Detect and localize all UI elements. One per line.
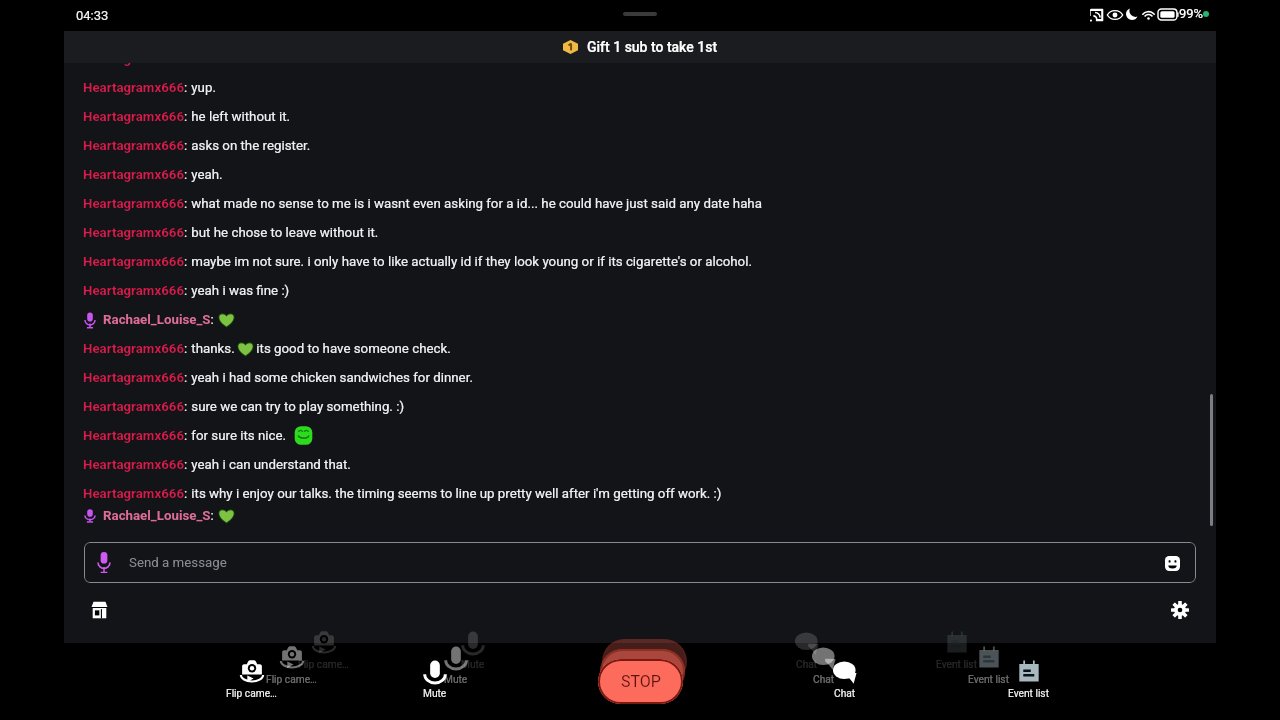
button[interactable]: Event list bbox=[983, 659, 1073, 707]
button[interactable]: Heartagramx666: bbox=[83, 363, 1216, 392]
staticText: Mute bbox=[444, 674, 468, 686]
button[interactable]: Heartagramx666: bbox=[83, 131, 1216, 160]
staticText: Heartagramx666: bbox=[83, 283, 188, 299]
button[interactable]: Heartagramx666: bbox=[83, 63, 1216, 73]
staticText: yeah. bbox=[188, 167, 223, 183]
staticText: STOP bbox=[621, 672, 661, 691]
button[interactable]: Send a message bbox=[84, 542, 1196, 583]
button[interactable]: Heartagramx666: bbox=[83, 334, 1216, 363]
staticText: Heartagramx666: bbox=[83, 167, 188, 183]
staticText: thanks. bbox=[188, 341, 238, 357]
button[interactable]: Heartagramx666: bbox=[83, 102, 1216, 131]
staticText: Rachael_Louise_S: bbox=[103, 312, 214, 328]
staticText: Flip came… bbox=[298, 659, 349, 671]
staticText: Heartagramx666: bbox=[83, 80, 188, 96]
staticText: Heartagramx666: bbox=[83, 109, 188, 125]
staticText: Flip came… bbox=[226, 688, 277, 700]
staticText: Mute bbox=[423, 688, 447, 700]
button[interactable]: Heartagramx666: bbox=[83, 450, 1216, 479]
staticText: Rachael_Louise_S: bbox=[103, 508, 214, 523]
staticText: Heartagramx666: bbox=[83, 370, 188, 386]
staticText: 99% bbox=[1179, 6, 1204, 21]
button[interactable]: Mute bbox=[428, 630, 518, 678]
staticText: Heartagramx666: bbox=[83, 486, 188, 502]
staticText: Event list bbox=[936, 659, 977, 671]
staticText: Chat bbox=[834, 688, 856, 700]
button[interactable]: STOP bbox=[602, 639, 687, 684]
staticText: Heartagramx666: bbox=[83, 63, 188, 67]
staticText: but he chose to leave without it. bbox=[188, 225, 379, 241]
button[interactable]: Gift 1 sub to take 1st bbox=[64, 31, 1216, 63]
button[interactable]: Flip came… bbox=[206, 659, 296, 707]
staticText: Gift 1 sub to take 1st bbox=[587, 39, 718, 55]
button[interactable]: Heartagramx666: bbox=[83, 479, 1216, 508]
staticText: Heartagramx666: bbox=[83, 457, 188, 473]
staticText: Heartagramx666: bbox=[83, 341, 188, 357]
staticText: yeah i had some chicken sandwiches for d… bbox=[188, 370, 473, 386]
button[interactable]: STOP bbox=[600, 649, 685, 694]
button[interactable]: Channel points shop bbox=[83, 594, 115, 626]
button[interactable]: Heartagramx666: bbox=[83, 160, 1216, 189]
button[interactable]: Mute bbox=[411, 645, 501, 693]
button[interactable]: Mute bbox=[390, 659, 480, 707]
staticText: Heartagramx666: bbox=[83, 428, 188, 444]
staticText: Heartagramx666: bbox=[83, 225, 188, 241]
button[interactable]: Heartagramx666: bbox=[83, 218, 1216, 247]
staticText: Heartagramx666: bbox=[83, 196, 188, 212]
button[interactable]: Event list bbox=[911, 630, 1001, 678]
button[interactable]: STOP bbox=[598, 659, 683, 704]
staticText: Event list bbox=[1008, 688, 1049, 700]
staticText: asks on the register. bbox=[188, 138, 311, 154]
button[interactable]: Chat bbox=[779, 645, 869, 693]
staticText: Send a message bbox=[129, 555, 227, 571]
button[interactable]: Heartagramx666: bbox=[83, 276, 1216, 305]
button[interactable]: Flip came… bbox=[278, 630, 368, 678]
button[interactable]: Heartagramx666: bbox=[83, 247, 1216, 276]
staticText: yeah i was fine :) bbox=[188, 283, 290, 299]
staticText: yeah i can understand that. bbox=[188, 457, 351, 473]
staticText: for sure its nice. bbox=[188, 428, 290, 444]
staticText: Flip came… bbox=[266, 674, 317, 686]
staticText: Heartagramx666: bbox=[83, 138, 188, 154]
staticText: Chat bbox=[796, 659, 818, 671]
button[interactable]: Chat bbox=[762, 630, 852, 678]
button[interactable]: Flip came… bbox=[246, 645, 336, 693]
staticText: STOP bbox=[623, 662, 663, 681]
staticText: yup. bbox=[188, 80, 216, 96]
staticText: its why i enjoy our talks. the timing se… bbox=[188, 486, 722, 502]
staticText: Chat bbox=[813, 674, 835, 686]
button[interactable]: Chat bbox=[800, 659, 890, 707]
staticText: Event list bbox=[968, 674, 1009, 686]
button[interactable]: Chat settings bbox=[1164, 594, 1196, 626]
button[interactable]: Emotes bbox=[1160, 551, 1184, 575]
staticText: sure we can try to play something. :) bbox=[188, 399, 405, 415]
button[interactable]: Event list bbox=[943, 645, 1033, 693]
staticText: STOP bbox=[625, 652, 665, 671]
button[interactable]: Heartagramx666: bbox=[83, 392, 1216, 421]
staticText: Heartagramx666: bbox=[83, 399, 188, 415]
button[interactable]: Rachael_Louise_S: bbox=[83, 305, 1216, 334]
button[interactable]: Rachael_Louise_S: bbox=[83, 508, 1216, 523]
staticText: Mute bbox=[461, 659, 485, 671]
staticText: he left without it. bbox=[188, 109, 291, 125]
staticText: maybe im not sure. i only have to like a… bbox=[188, 254, 752, 270]
button[interactable]: Heartagramx666: bbox=[83, 73, 1216, 102]
staticText: Heartagramx666: bbox=[83, 254, 188, 270]
button[interactable]: Heartagramx666: bbox=[83, 421, 1216, 450]
staticText: 04:33 bbox=[76, 8, 109, 23]
staticText: what made no sense to me is i wasnt even… bbox=[188, 196, 762, 212]
staticText: its good to have someone check. bbox=[253, 341, 451, 357]
button[interactable]: Heartagramx666: bbox=[83, 189, 1216, 218]
